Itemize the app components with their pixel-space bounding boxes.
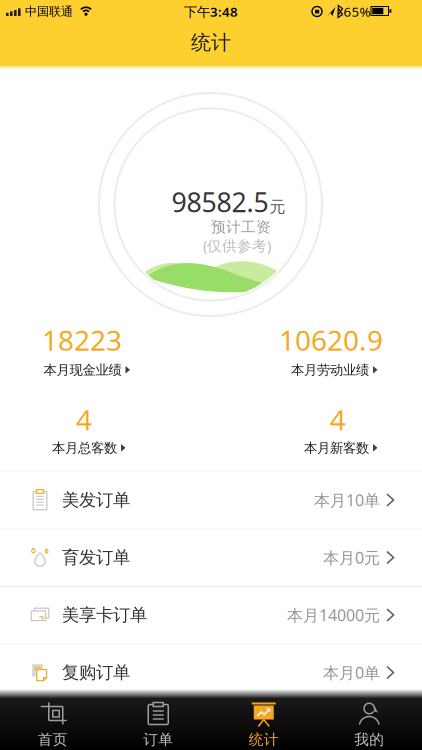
staticText: 本月0元 [323,547,380,568]
staticText: 预计工资 [211,218,271,236]
staticText: 本月总客数 [52,440,117,456]
staticText: 美发订单 [62,489,130,511]
staticText: 4 [76,401,92,438]
button[interactable]: 本月现金业绩 [43,362,130,378]
staticText: 下午3:48 [184,3,238,20]
staticText: 本月劳动业绩 [291,362,369,378]
staticText: 本月14000元 [287,604,380,626]
staticText: 4 [330,401,346,438]
staticText: 98582.5 [171,184,268,220]
button[interactable]: 订单 [106,700,211,750]
staticText: 复购订单 [62,662,130,683]
button[interactable]: 美发订单 [0,472,422,528]
staticText: 65% [343,3,370,20]
staticText: 本月10单 [314,489,380,511]
staticText: 统计 [249,730,279,748]
staticText: 我的 [354,730,384,748]
staticText: 统计 [191,30,231,55]
button[interactable]: 本月劳动业绩 [291,362,378,378]
staticText: 18223 [42,321,122,359]
button[interactable]: 我的 [317,700,422,750]
staticText: 首页 [38,730,68,748]
button[interactable]: 育发订单 [0,529,422,585]
button[interactable]: 首页 [0,700,105,750]
staticText: 元 [269,197,285,217]
staticText: 美享卡订单 [62,604,147,626]
staticText: (仅供参考) [203,236,271,255]
staticText: 10620.9 [279,321,383,359]
button[interactable]: 美享卡订单 [0,587,422,643]
button[interactable]: 复购订单 [0,644,422,700]
button[interactable]: 本月总客数 [52,440,126,456]
staticText: 中国联通 [25,4,73,19]
staticText: 育发订单 [62,547,130,568]
staticText: 本月新客数 [304,440,369,456]
button[interactable]: 统计 [211,700,316,750]
staticText: 订单 [143,730,173,748]
button[interactable]: 本月新客数 [304,440,378,456]
staticText: 本月现金业绩 [43,362,121,378]
staticText: 本月0单 [323,662,380,683]
